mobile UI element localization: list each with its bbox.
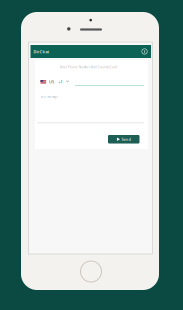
button[interactable]: Info: [138, 45, 151, 58]
button[interactable]: US: [40, 79, 68, 85]
staticText: DirChat: [33, 49, 49, 54]
button[interactable]: Send: [108, 135, 139, 143]
staticText: Enter Phone Number And Country Code: [60, 65, 118, 69]
staticText: Send: [121, 137, 130, 142]
staticText: Your Message: [40, 95, 58, 98]
staticText: US: [49, 79, 54, 84]
staticText: +1: [59, 79, 63, 84]
